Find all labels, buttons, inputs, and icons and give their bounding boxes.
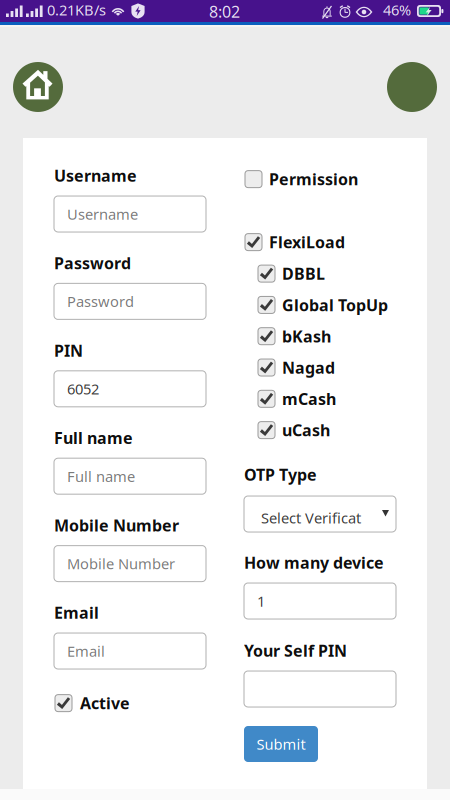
button[interactable]: Active xyxy=(55,692,280,714)
staticText: Full name xyxy=(67,466,135,486)
staticText: Active xyxy=(80,692,130,714)
staticText: uCash xyxy=(282,419,330,441)
staticText: Password xyxy=(54,252,131,274)
staticText: Submit xyxy=(256,734,305,754)
button[interactable]: uCash xyxy=(258,419,450,441)
staticText: Full name xyxy=(54,427,133,448)
button[interactable]: Permission xyxy=(245,168,450,190)
button[interactable]: Account xyxy=(387,62,437,112)
button[interactable]: Home xyxy=(13,62,63,112)
staticText: 8:02 xyxy=(209,1,240,22)
button[interactable]: Mobile Number xyxy=(54,546,206,582)
button[interactable]: 6052 xyxy=(54,371,206,407)
button[interactable] xyxy=(244,671,396,707)
button[interactable]: bKash xyxy=(258,326,450,347)
staticText: Your Self PIN xyxy=(244,640,347,661)
staticText: 0.21KB/s xyxy=(47,0,106,19)
staticText: Nagad xyxy=(282,357,335,378)
staticText: How many device xyxy=(244,552,384,573)
staticText: bKash xyxy=(282,326,331,347)
staticText: Username xyxy=(67,204,138,224)
button[interactable]: Global TopUp xyxy=(258,294,450,315)
staticText: DBBL xyxy=(282,263,325,284)
staticText: Permission xyxy=(269,168,358,190)
staticText: mCash xyxy=(282,388,336,409)
button[interactable]: FlexiLoad xyxy=(245,231,450,253)
button[interactable]: 1 xyxy=(244,583,396,619)
staticText: Password xyxy=(67,292,134,311)
button[interactable]: Submit xyxy=(244,726,318,762)
button[interactable]: Select Verificat xyxy=(244,496,396,532)
staticText: OTP Type xyxy=(244,464,317,485)
button[interactable]: Password xyxy=(54,283,206,319)
staticText: Email xyxy=(67,641,105,661)
staticText: Mobile Number xyxy=(54,515,179,536)
staticText: Select Verificat xyxy=(261,508,361,527)
button[interactable]: Nagad xyxy=(258,357,450,378)
button[interactable]: Username xyxy=(54,196,206,232)
staticText: Username xyxy=(54,165,137,186)
staticText: 6052 xyxy=(67,379,99,399)
staticText: Email xyxy=(54,602,99,623)
staticText: Mobile Number xyxy=(67,554,175,573)
staticText: PIN xyxy=(54,340,83,361)
staticText: 46% xyxy=(383,0,411,19)
button[interactable]: mCash xyxy=(258,388,450,409)
button[interactable]: Email xyxy=(54,633,206,669)
staticText: Global TopUp xyxy=(282,294,388,315)
button[interactable]: DBBL xyxy=(258,263,450,284)
button[interactable]: Full name xyxy=(54,458,206,494)
staticText: 1 xyxy=(257,591,265,611)
staticText: FlexiLoad xyxy=(269,231,345,253)
